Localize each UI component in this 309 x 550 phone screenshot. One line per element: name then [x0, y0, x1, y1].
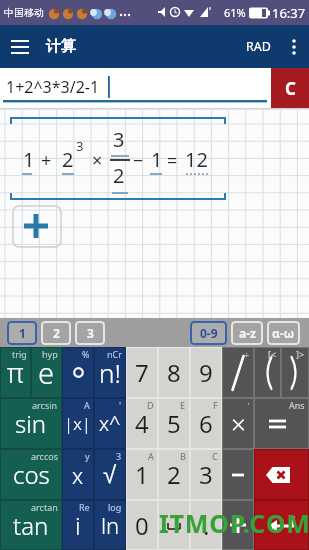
button[interactable]: arcsin: [0, 398, 62, 449]
button[interactable]: RAD: [238, 25, 279, 68]
staticText: 1: [23, 146, 35, 173]
staticText: 计算: [46, 37, 76, 56]
staticText: C: [212, 450, 218, 462]
staticText: 中国移动: [4, 6, 44, 19]
staticText: F: [213, 399, 218, 411]
staticText: 2: [62, 146, 74, 173]
staticText: 4: [135, 407, 149, 440]
button[interactable]: ÷: [222, 347, 254, 398]
button[interactable]: %: [62, 347, 94, 398]
staticText: |x|: [64, 412, 92, 435]
button[interactable]: Re: [62, 500, 94, 550]
staticText: ×: [231, 406, 246, 441]
staticText: 9: [199, 356, 213, 389]
staticText: 61%: [224, 5, 246, 20]
staticText: B: [180, 450, 186, 462]
button[interactable]: arccos: [0, 449, 62, 500]
staticText: √: [103, 461, 117, 488]
button[interactable]: log: [94, 500, 126, 550]
staticText: sin: [15, 407, 47, 440]
staticText: 3: [113, 126, 125, 153]
staticText: 3: [116, 450, 122, 462]
staticText: ÷: [244, 348, 250, 360]
button[interactable]: [222, 449, 254, 500]
staticText: a-z: [239, 325, 256, 341]
staticText: 1: [135, 458, 149, 491]
staticText: 1+2^3*3/2-1: [6, 76, 100, 98]
staticText: A: [148, 450, 154, 462]
staticText: α-ω: [272, 325, 295, 341]
button[interactable]: [254, 500, 309, 550]
staticText: 7: [135, 356, 149, 389]
staticText: %: [82, 348, 90, 360]
staticText: D: [147, 399, 154, 411]
staticText: nCr: [107, 348, 122, 360]
staticText: 3: [199, 458, 213, 491]
button[interactable]: D: [126, 398, 158, 449]
button[interactable]: 1: [7, 321, 37, 345]
button[interactable]: C: [190, 449, 222, 500]
button[interactable]: E: [158, 398, 190, 449]
staticText: E: [180, 399, 186, 411]
button[interactable]: arctan: [0, 500, 62, 550]
button[interactable]: [222, 500, 254, 550]
button[interactable]: B: [158, 449, 190, 500]
staticText: +: [41, 148, 52, 173]
staticText: arcsin: [32, 399, 58, 411]
staticText: x: [72, 460, 84, 490]
staticText: i: [75, 509, 81, 542]
button[interactable]: 9: [190, 347, 222, 398]
button[interactable]: 0: [126, 500, 158, 550]
staticText: 16:37: [272, 4, 306, 22]
staticText: Re: [79, 501, 90, 513]
staticText: 1: [151, 146, 163, 173]
button[interactable]: 7: [126, 347, 158, 398]
button[interactable]: α-ω: [267, 321, 300, 345]
button[interactable]: hyp: [31, 347, 62, 398]
button[interactable]: nCr: [94, 347, 126, 398]
button[interactable]: a-z: [231, 321, 263, 345]
staticText: trig: [12, 348, 27, 360]
staticText: 12: [185, 146, 208, 173]
staticText: log: [108, 501, 122, 513]
staticText: cos: [13, 458, 50, 491]
button[interactable]: .: [190, 500, 222, 550]
button[interactable]: C: [271, 68, 309, 108]
staticText: −: [133, 148, 144, 173]
staticText: .: [203, 509, 210, 542]
staticText: ⋅: [247, 399, 250, 409]
button[interactable]: [158, 500, 190, 550]
button[interactable]: [<: [254, 347, 281, 398]
button[interactable]: ⋅: [222, 398, 254, 449]
staticText: 2: [53, 325, 60, 341]
staticText: 5: [167, 407, 181, 440]
button[interactable]: 0-9: [190, 321, 227, 345]
button[interactable]: 2: [41, 321, 71, 345]
button[interactable]: Ans: [254, 398, 309, 449]
button[interactable]: [254, 449, 309, 500]
button[interactable]: ]>: [281, 347, 309, 398]
button[interactable]: 8: [158, 347, 190, 398]
button[interactable]: A: [126, 449, 158, 500]
staticText: 6: [199, 407, 213, 440]
button[interactable]: ': [94, 398, 126, 449]
staticText: [<: [268, 348, 277, 360]
button[interactable]: trig: [0, 347, 31, 398]
staticText: ': [119, 399, 122, 411]
button[interactable]: 3: [75, 321, 105, 345]
staticText: RAD: [246, 38, 271, 55]
staticText: ]>: [296, 348, 305, 360]
staticText: y: [85, 450, 90, 462]
button[interactable]: 3: [94, 449, 126, 500]
button[interactable]: y: [62, 449, 94, 500]
button[interactable]: [12, 206, 61, 247]
staticText: A: [84, 399, 90, 411]
button[interactable]: [0, 25, 40, 68]
staticText: ×: [92, 148, 103, 173]
button[interactable]: F: [190, 398, 222, 449]
staticText: n!: [99, 355, 121, 390]
staticText: 3: [87, 325, 94, 341]
staticText: x^: [99, 410, 121, 437]
button[interactable]: [279, 25, 309, 68]
button[interactable]: A: [62, 398, 94, 449]
